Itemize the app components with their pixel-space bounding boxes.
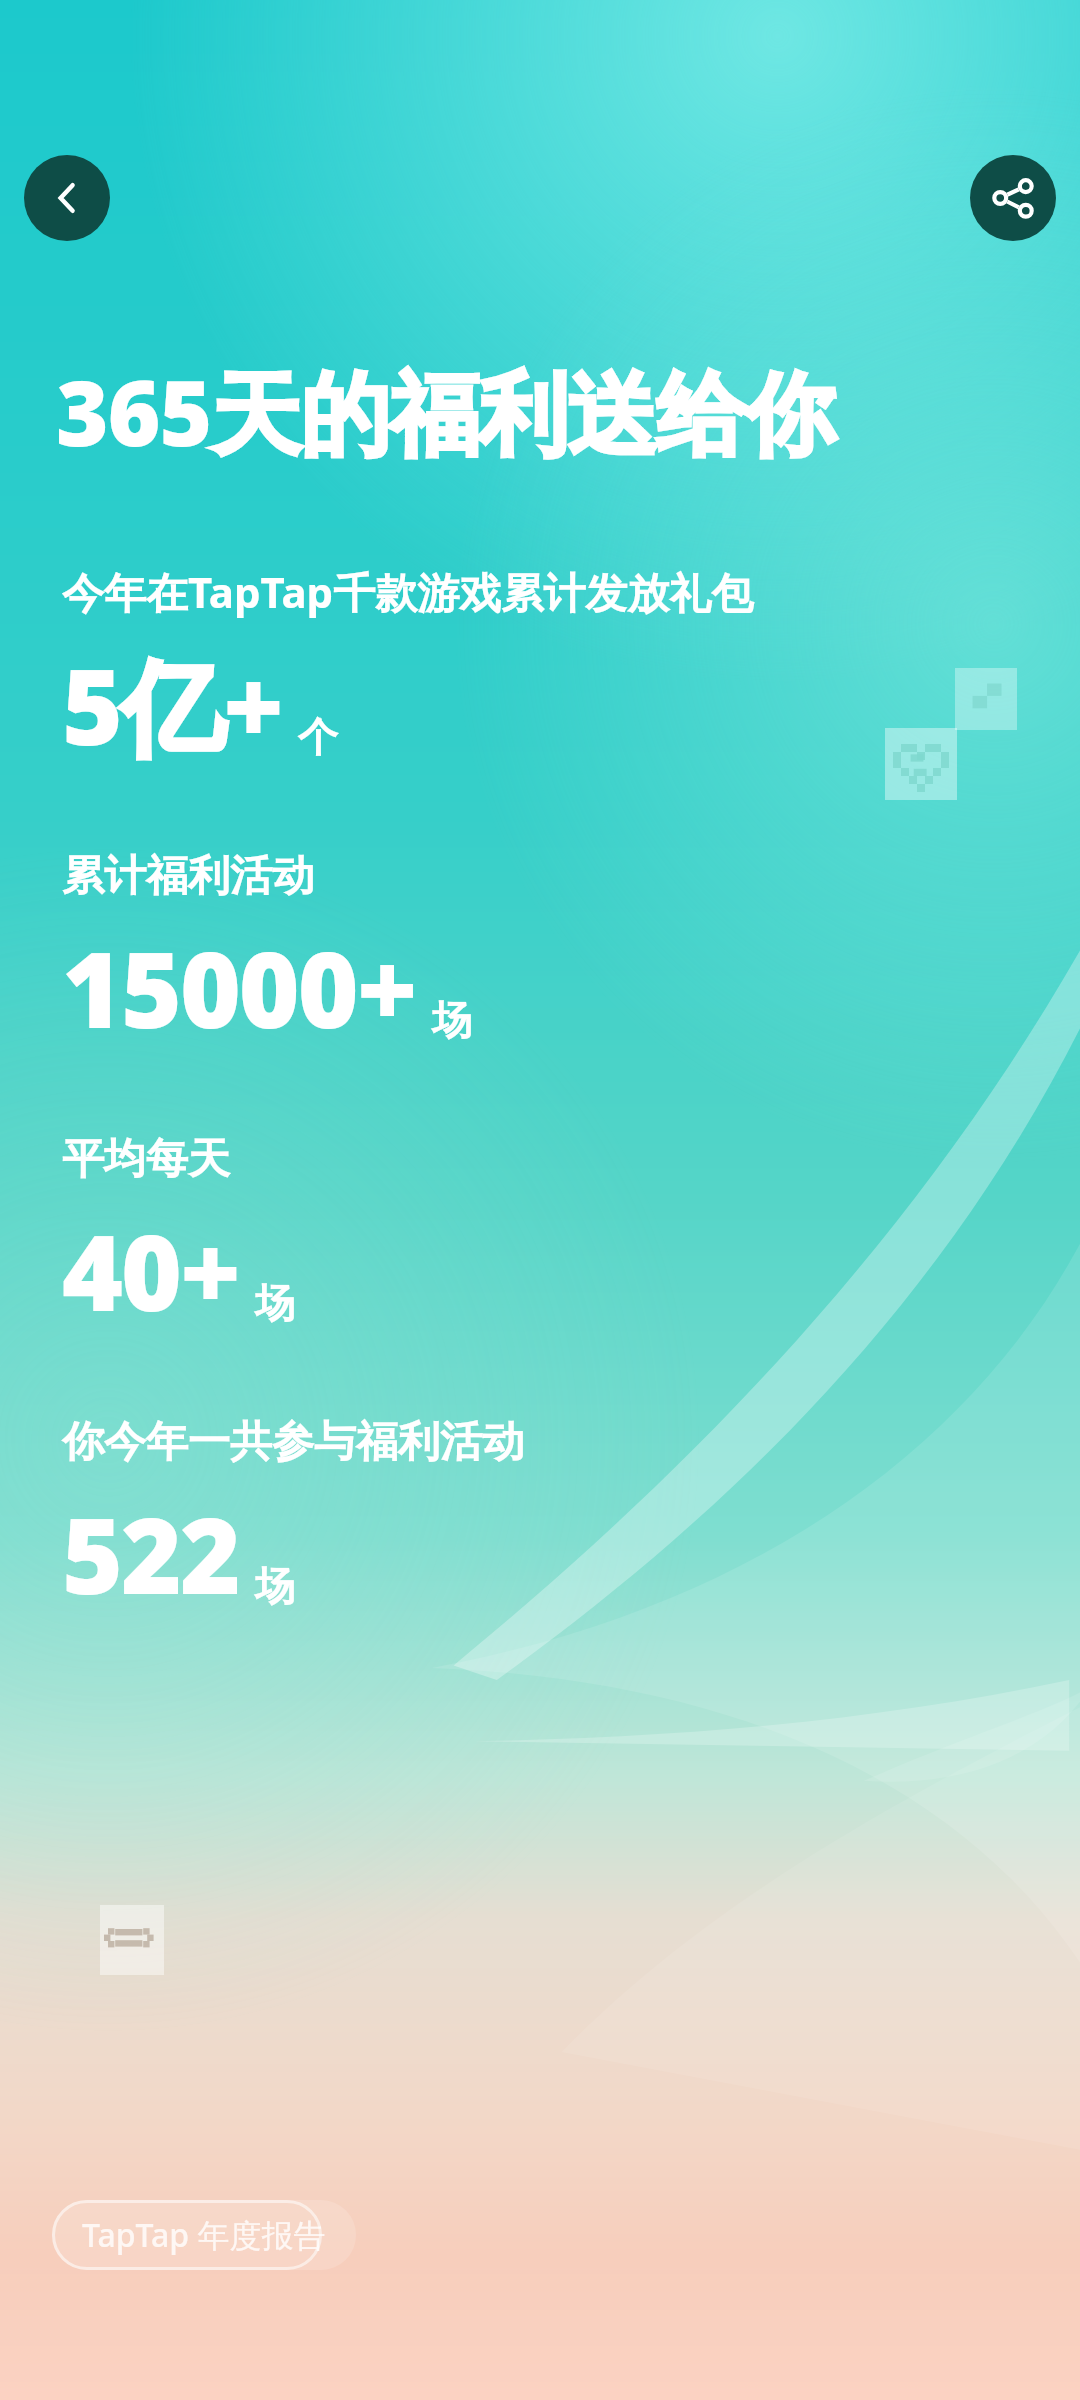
button[interactable]: Share	[970, 155, 1056, 241]
staticText: 场	[255, 1561, 295, 1611]
staticText: 你今年一共参与福利活动	[62, 1416, 524, 1469]
staticText: 365天的福利送给你	[56, 350, 835, 473]
button[interactable]: Back	[24, 155, 110, 241]
staticText: TapTap 年度报告	[82, 2213, 326, 2257]
staticText: 平均每天	[62, 1133, 230, 1186]
staticText: 40+	[62, 1200, 239, 1342]
staticText: 场	[255, 1278, 295, 1328]
staticText: 场	[432, 995, 472, 1045]
staticText: 5亿+	[62, 634, 282, 776]
staticText: 今年在TapTap千款游戏累计发放礼包	[62, 563, 754, 620]
button[interactable]: TapTap 年度报告	[52, 2200, 356, 2270]
staticText: 累计福利活动	[62, 850, 314, 903]
staticText: 15000+	[62, 917, 416, 1059]
staticText: 522	[62, 1483, 239, 1625]
staticText: 个	[298, 712, 338, 762]
